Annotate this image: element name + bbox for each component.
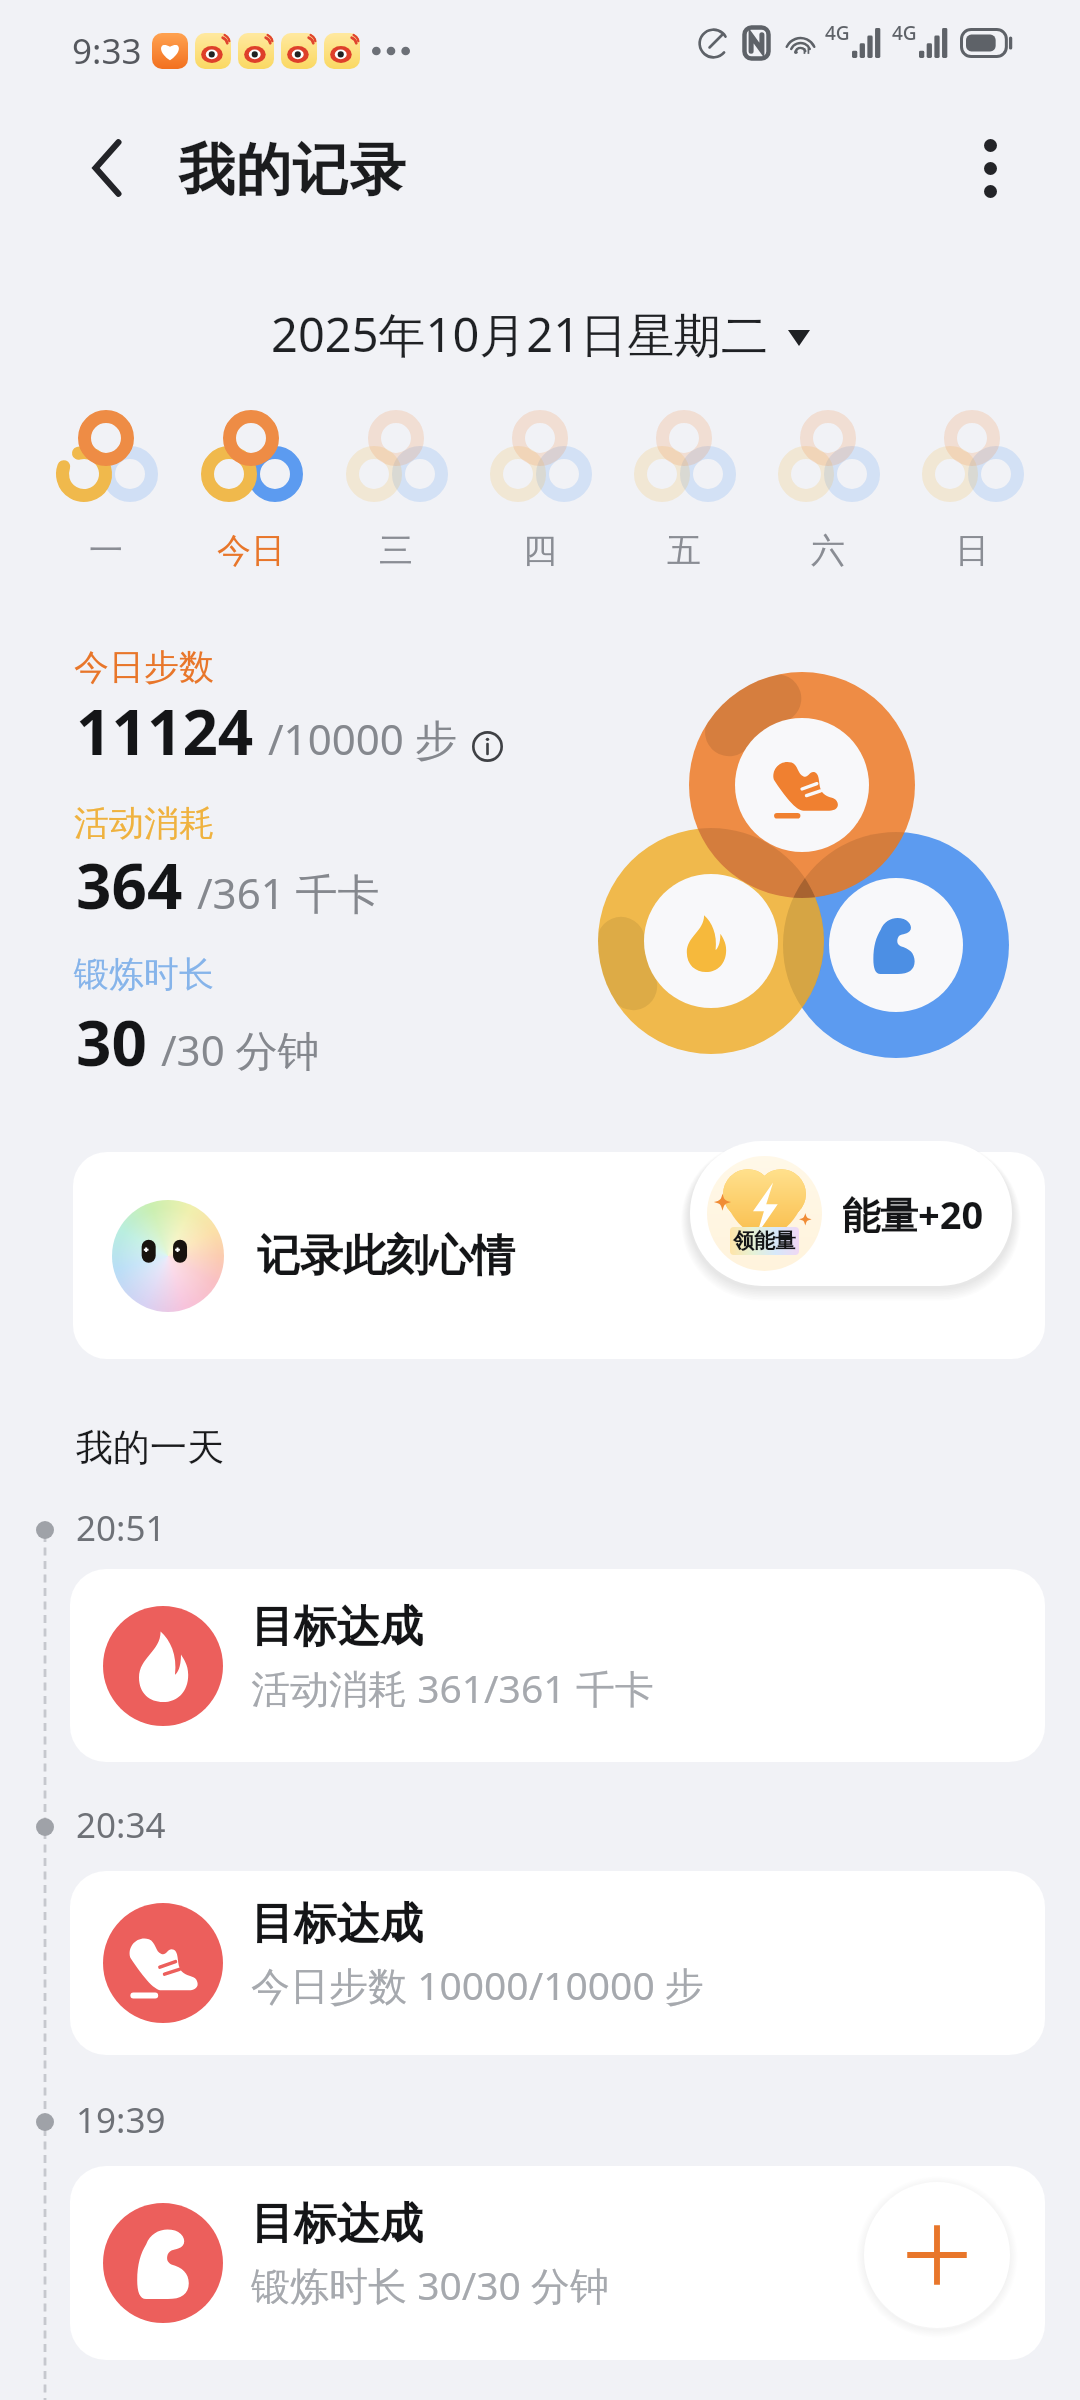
- staticText: 2025年10月21日星期二: [271, 302, 769, 366]
- staticText: 9:33: [72, 27, 142, 75]
- staticText: 今日: [217, 529, 285, 572]
- button[interactable]: Step info: [469, 728, 505, 764]
- button[interactable]: 三: [323, 410, 468, 572]
- button[interactable]: 今日: [178, 410, 323, 572]
- staticText: 4G: [825, 20, 850, 46]
- staticText: 20:34: [76, 1801, 166, 1849]
- button[interactable]: 目标达成: [70, 1871, 1045, 2055]
- staticText: 我的一天: [76, 1424, 224, 1471]
- staticText: 活动消耗 361/361 千卡: [251, 1661, 654, 1714]
- button[interactable]: 日: [900, 410, 1044, 572]
- staticText: /361 千卡: [197, 864, 380, 921]
- staticText: 目标达成: [251, 2197, 423, 2251]
- button[interactable]: More options: [940, 118, 1040, 218]
- staticText: 领能量: [733, 1228, 796, 1254]
- button[interactable]: Back: [57, 118, 157, 218]
- staticText: /10000 步: [268, 710, 457, 767]
- button[interactable]: 记录此刻心情: [73, 1152, 1045, 1359]
- staticText: 六: [811, 529, 845, 572]
- button[interactable]: 四: [468, 410, 612, 572]
- staticText: 19:39: [76, 2096, 166, 2144]
- staticText: 364: [76, 843, 183, 927]
- staticText: 20:51: [76, 1504, 166, 1552]
- staticText: 锻炼时长 30/30 分钟: [251, 2258, 610, 2311]
- staticText: 锻炼时长: [74, 952, 214, 996]
- staticText: 11124: [76, 689, 254, 773]
- button[interactable]: 六: [756, 410, 900, 572]
- staticText: 日: [955, 529, 989, 572]
- staticText: /30 分钟: [161, 1021, 320, 1078]
- button[interactable]: 2025年10月21日星期二: [251, 294, 830, 374]
- staticText: 目标达成: [251, 1897, 423, 1951]
- button[interactable]: 目标达成: [70, 2166, 1045, 2360]
- staticText: 今日步数 10000/10000 步: [251, 1958, 704, 2011]
- button[interactable]: 五: [612, 410, 756, 572]
- staticText: 一: [89, 529, 123, 572]
- staticText: 4G: [892, 20, 917, 46]
- button[interactable]: 目标达成: [70, 1569, 1045, 1762]
- staticText: 我的记录: [178, 135, 406, 206]
- button[interactable]: 一: [33, 410, 178, 572]
- staticText: 目标达成: [251, 1600, 423, 1654]
- staticText: 五: [667, 529, 701, 572]
- staticText: 四: [523, 529, 557, 572]
- staticText: 活动消耗: [74, 801, 214, 845]
- staticText: 记录此刻心情: [257, 1229, 515, 1283]
- staticText: 三: [379, 529, 413, 572]
- button[interactable]: Add record: [864, 2182, 1010, 2328]
- staticText: 30: [76, 1000, 147, 1084]
- staticText: 能量+20: [842, 1188, 984, 1240]
- staticText: 今日步数: [74, 645, 214, 689]
- button[interactable]: 领能量: [690, 1141, 1012, 1286]
